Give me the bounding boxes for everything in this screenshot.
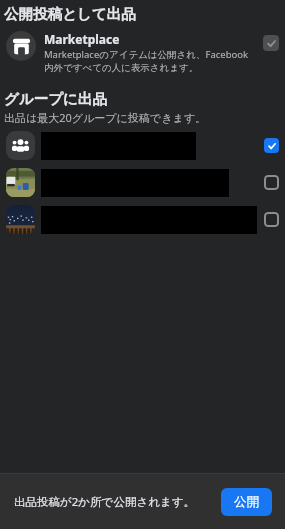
button[interactable]: Group 2 not selected: [0, 168, 285, 197]
button[interactable]: Group 1 selected: [0, 131, 285, 160]
staticText: Marketplaceのアイテムは公開され、Facebook内外ですべての人に表…: [44, 48, 257, 74]
staticText: 出品投稿が2か所で公開されます。: [14, 494, 221, 510]
other: Group 1 selected: [264, 138, 279, 153]
button[interactable]: Group 3 not selected: [0, 205, 285, 234]
other: Group 2 not selected: [264, 175, 279, 190]
staticText: 出品は最大20グループに投稿できます。: [4, 110, 206, 125]
staticText: 公開: [234, 494, 259, 510]
staticText: Marketplace: [44, 31, 120, 47]
staticText: グループに出品: [4, 90, 107, 108]
button[interactable]: 公開: [221, 488, 272, 516]
other: Group 3 not selected: [264, 212, 279, 227]
other: Marketplace selected (locked): [263, 35, 279, 51]
staticText: 公開投稿として出品: [4, 5, 136, 23]
button[interactable]: Marketplace: [0, 29, 285, 76]
